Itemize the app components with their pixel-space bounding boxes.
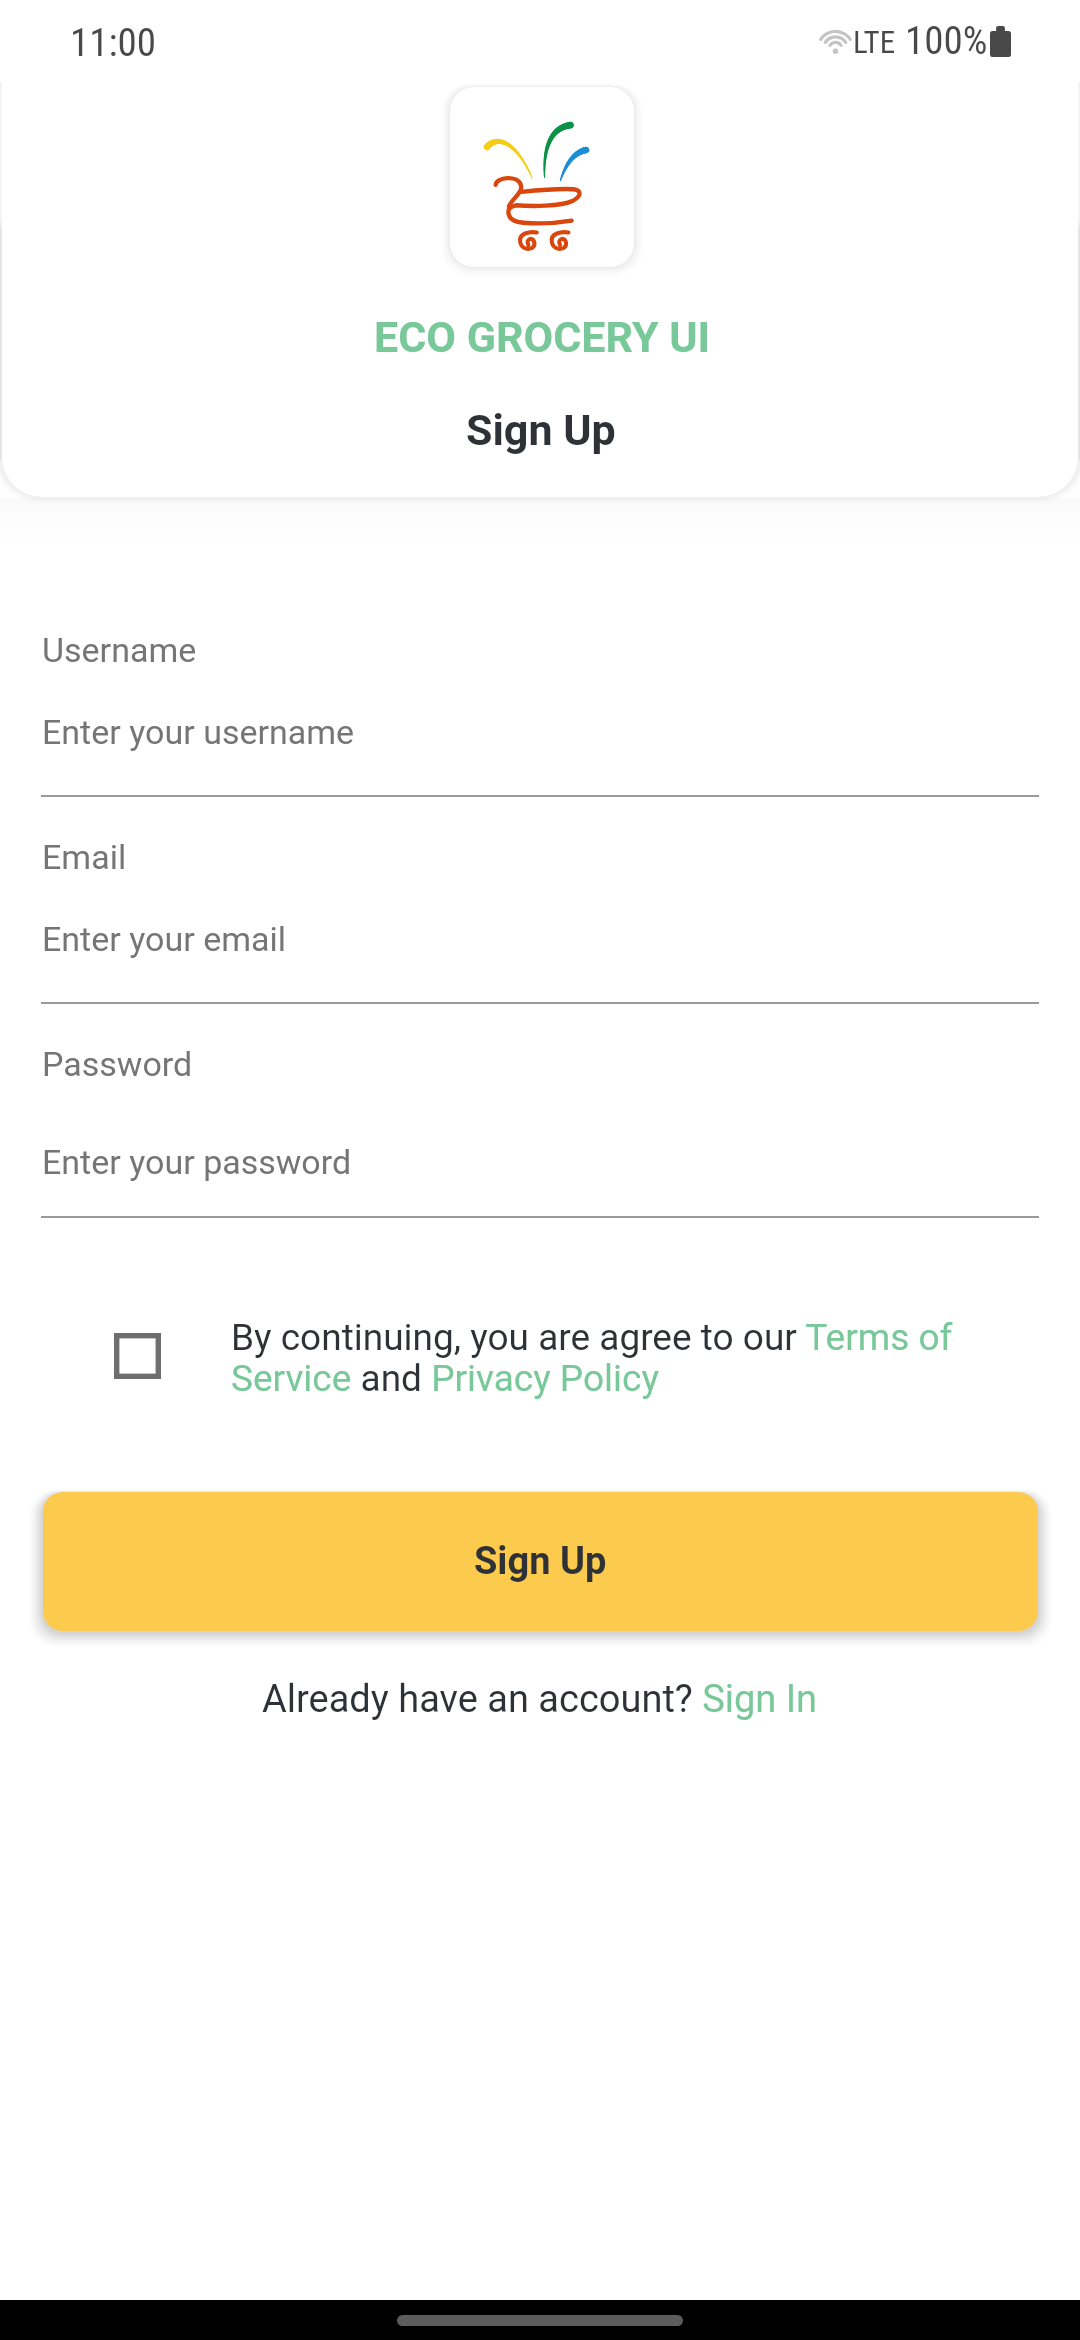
staticText: Enter your username	[42, 712, 355, 752]
button[interactable]	[41, 1034, 1039, 1218]
staticText: Username	[42, 630, 197, 670]
staticText: By continuing, you are agree to our Term…	[231, 1316, 964, 1400]
button[interactable]: Already have an account? Sign In	[262, 1677, 818, 1722]
staticText: 100%	[905, 18, 988, 64]
staticText: Sign Up	[474, 1539, 607, 1584]
staticText: Password	[42, 1044, 193, 1084]
staticText: Enter your password	[42, 1142, 352, 1182]
button[interactable]: Sign Up	[43, 1492, 1038, 1631]
button[interactable]: By continuing, you are agree to our Term…	[231, 1316, 964, 1400]
button[interactable]	[41, 828, 1039, 1004]
button[interactable]	[41, 620, 1039, 800]
staticText: Email	[42, 837, 127, 877]
staticText: ECO GROCERY UI	[374, 312, 711, 362]
staticText: Already have an account? Sign In	[262, 1677, 818, 1722]
staticText: 11:00	[70, 20, 157, 66]
staticText: Enter your email	[42, 919, 287, 959]
staticText: Sign Up	[466, 405, 616, 455]
staticText: LTE	[853, 24, 896, 60]
button[interactable]: Agree to terms checkbox	[106, 1326, 168, 1386]
